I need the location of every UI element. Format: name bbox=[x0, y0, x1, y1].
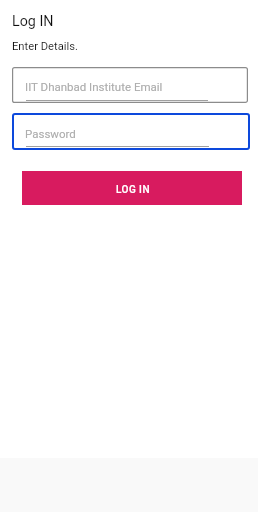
staticText: Log IN bbox=[12, 13, 54, 30]
staticText: LOG IN bbox=[116, 184, 150, 196]
staticText: Enter Details. bbox=[12, 40, 78, 53]
staticText: IIT Dhanbad Institute Email bbox=[25, 80, 163, 93]
button[interactable]: LOG IN bbox=[22, 171, 242, 205]
button[interactable]: Institute email field bbox=[12, 67, 248, 103]
staticText: Password bbox=[25, 127, 76, 140]
button[interactable]: Password field bbox=[12, 113, 250, 150]
